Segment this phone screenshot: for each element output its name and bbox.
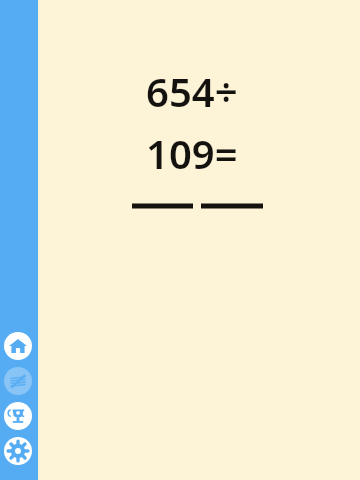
staticText: 109= bbox=[146, 126, 238, 180]
button[interactable]: Toggle sound bbox=[4, 367, 32, 395]
staticText: 654÷ bbox=[146, 64, 238, 118]
button[interactable]: Achievements bbox=[4, 402, 32, 430]
button[interactable]: Home bbox=[4, 332, 32, 360]
button[interactable]: Settings bbox=[4, 437, 32, 465]
